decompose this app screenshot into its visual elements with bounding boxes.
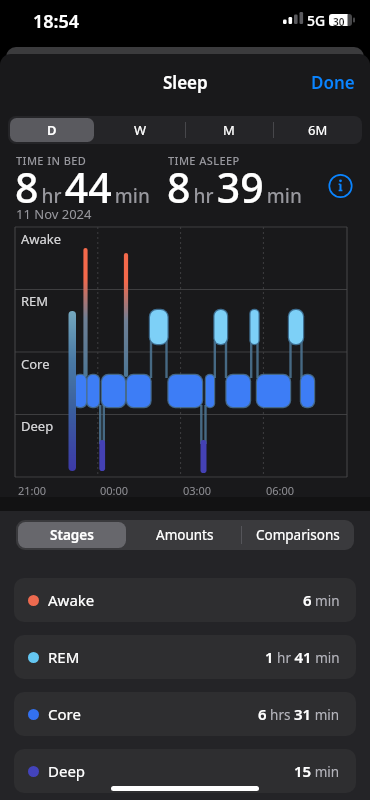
staticText: REM [48,647,80,667]
button[interactable]: Core [14,692,356,736]
staticText: Core [48,704,81,724]
button[interactable]: REM [14,635,356,679]
staticText: REM [21,292,49,310]
staticText: 03:00 [183,483,212,498]
staticText: Core [21,355,50,373]
staticText: 00:00 [100,483,129,498]
button[interactable]: Comparisons [243,522,352,548]
staticText: Sleep [163,71,208,93]
staticText: Awake [48,590,95,610]
button[interactable]: Deep [14,749,356,793]
staticText: Done [311,71,355,93]
staticText: 11 Nov 2024 [16,205,92,223]
staticText: 6M [308,121,328,139]
button[interactable] [326,171,355,200]
staticText: TIME ASLEEP [168,153,240,168]
staticText: 15 min [294,761,340,781]
staticText: W [134,121,147,139]
staticText: TIME IN BED [16,153,87,168]
staticText: 6 hrs 31 min [258,704,340,724]
staticText: Comparisons [256,526,340,544]
button[interactable]: Stages [18,522,126,548]
staticText: 06:00 [266,483,295,498]
staticText: 8 hr 44 min [15,159,150,215]
staticText: Deep [21,417,54,435]
staticText: 1 hr 41 min [265,647,340,667]
staticText: 6 min [303,590,340,610]
button[interactable]: Amounts [130,522,239,548]
staticText: Amounts [156,526,214,544]
staticText: Deep [48,761,86,781]
staticText: Stages [50,526,94,544]
staticText: 30 [333,15,345,29]
button[interactable]: M [186,118,271,142]
staticText: 21:00 [18,483,47,498]
staticText: D [47,121,57,139]
button[interactable]: D [10,118,94,142]
staticText: M [223,121,235,139]
staticText: 5G [307,11,326,30]
staticText: 18:54 [33,9,80,34]
staticText: 8 hr 39 min [167,159,302,215]
button[interactable]: Awake [14,578,356,622]
staticText: Awake [21,230,62,248]
button[interactable]: W [98,118,182,142]
button[interactable]: Done [311,71,355,93]
button[interactable]: 6M [275,118,360,142]
